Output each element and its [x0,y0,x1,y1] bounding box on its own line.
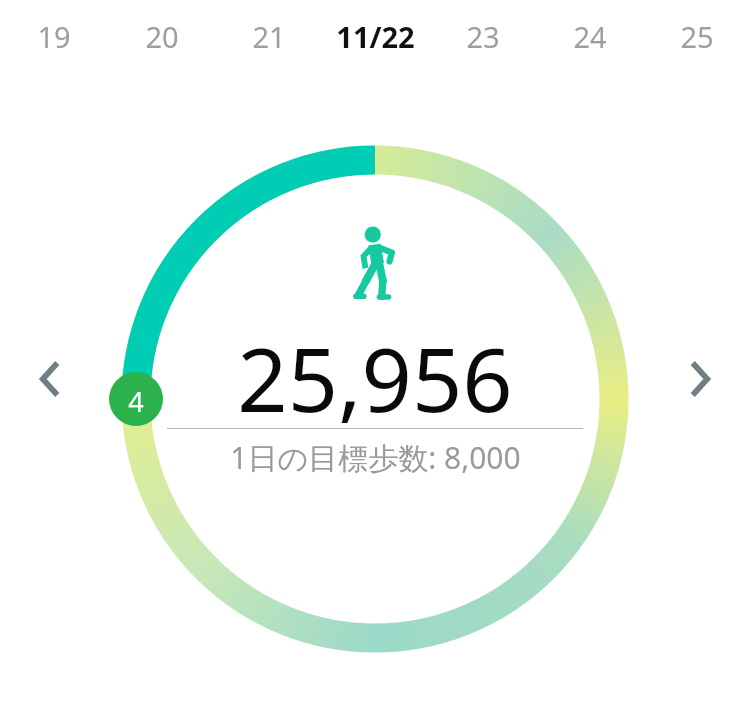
staticText: 1日の目標歩数: 8,000 [230,437,521,478]
button[interactable]: Next day [672,351,728,407]
staticText: 25,956 [237,318,513,438]
button[interactable]: 19 [0,0,108,72]
staticText: 4 [128,383,144,420]
staticText: 20 [145,17,179,56]
staticText: 23 [466,17,500,56]
staticText: 11/22 [336,17,415,56]
staticText: 24 [573,17,607,56]
button[interactable]: 11/22 [322,0,429,72]
staticText: 21 [252,17,286,56]
button[interactable]: Previous day [22,351,78,407]
button[interactable]: 23 [429,0,536,72]
button[interactable]: 4 [109,374,163,428]
button[interactable]: 20 [108,0,215,72]
button[interactable]: 21 [215,0,322,72]
staticText: 19 [37,17,71,56]
button[interactable]: 25 [643,0,750,72]
staticText: 25 [680,17,714,56]
button[interactable]: 24 [536,0,643,72]
